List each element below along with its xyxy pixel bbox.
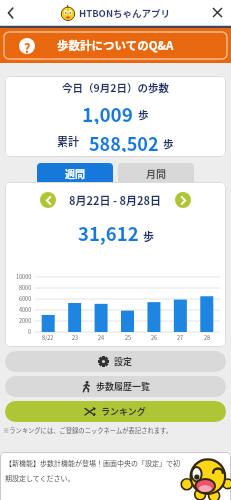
button[interactable] [175,192,191,208]
staticText: 歩 [138,107,149,122]
staticText: 8月22日 - 8月28日 [69,192,162,208]
staticText: ※ランキングには、ご登録のニックネームが表記されます。 [3,426,173,435]
staticText: 588,502 [89,130,159,152]
button[interactable]: HTBONちゃんアプリ [0,0,231,25]
staticText: ? [24,38,31,54]
staticText: 週間 [65,166,85,180]
staticText: 歩数計についてのQ&A [57,37,174,54]
staticText: 歩数履歴一覧 [96,380,151,393]
staticText: 歩 [143,228,154,244]
button[interactable]: ? [0,28,231,63]
button[interactable]: 月間 [118,163,194,182]
staticText: HTBONちゃんアプリ [79,6,171,20]
button[interactable] [6,8,16,18]
staticText: 27 [177,334,184,342]
staticText: 31,612 [78,220,139,246]
button[interactable]: ランキング [5,401,226,422]
staticText: 1,009 [82,100,134,124]
staticText: 10000 [16,273,32,281]
staticText: 月間 [146,166,166,180]
staticText: 【新機能】歩数計機能が登場！画面中央の「設定」で初 [5,458,180,468]
staticText: 8/22 [42,334,54,342]
button[interactable]: 週間 [37,163,113,182]
staticText: 23 [72,334,79,342]
staticText: 8000 [19,284,32,292]
button[interactable]: 設定 [5,351,226,372]
staticText: 26 [151,334,158,342]
staticText: ランキング [101,405,146,418]
staticText: 4000 [19,306,32,314]
staticText: 28 [204,334,211,342]
staticText: 24 [98,334,105,342]
staticText: 期設定してください。 [5,473,75,483]
staticText: 2000 [19,317,32,325]
staticText: 6000 [19,295,32,303]
staticText: 今日（9月2日）の歩数 [62,80,169,95]
button[interactable] [40,192,56,208]
staticText: 歩 [163,136,174,151]
staticText: 設定 [114,355,133,368]
staticText: 0 [28,328,32,336]
staticText: 累計 [57,133,79,149]
button[interactable] [213,8,222,17]
button[interactable]: 歩数履歴一覧 [5,376,226,397]
staticText: 25 [125,334,132,342]
